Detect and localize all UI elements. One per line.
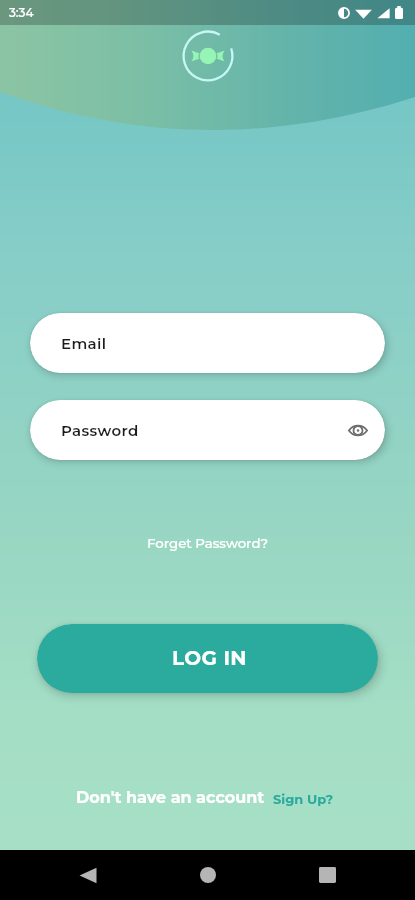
button[interactable]: Home	[180, 850, 236, 900]
staticText: Email	[61, 334, 107, 352]
button[interactable]: Password	[30, 400, 385, 460]
button[interactable]: Show password	[341, 413, 375, 447]
staticText: Password	[61, 421, 139, 439]
button[interactable]: Back	[60, 850, 116, 900]
staticText: 3:34	[9, 5, 34, 20]
staticText: LOG IN	[172, 646, 247, 670]
button[interactable]: Recent apps	[299, 850, 355, 900]
button[interactable]: Forget Password?	[0, 533, 415, 553]
staticText: Don't have an account	[76, 788, 265, 808]
staticText: Forget Password?	[147, 535, 269, 551]
staticText: Sign Up?	[273, 791, 334, 807]
button[interactable]: Sign Up?	[273, 791, 334, 807]
button[interactable]: LOG IN	[37, 624, 378, 693]
button[interactable]: Email	[30, 313, 385, 373]
